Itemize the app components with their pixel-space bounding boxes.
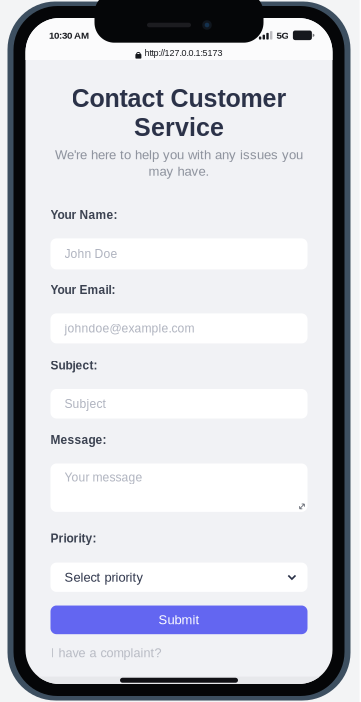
- staticText: Message:: [50, 433, 106, 447]
- staticText: Submit: [158, 613, 199, 627]
- staticText: Select priority: [64, 570, 142, 584]
- button[interactable]: Submit: [50, 605, 307, 634]
- staticText: Service: [134, 113, 224, 141]
- button[interactable]: Your message: [50, 463, 307, 512]
- button[interactable]: I have a complaint?: [50, 646, 161, 659]
- staticText: I have a complaint?: [50, 646, 161, 660]
- staticText: Your message: [64, 470, 142, 484]
- staticText: Contact Customer: [71, 84, 286, 112]
- staticText: We're here to help you with any issues y…: [55, 147, 303, 162]
- button[interactable]: johndoe@example.com: [50, 313, 307, 343]
- staticText: Priority:: [50, 532, 96, 545]
- button[interactable]: John Doe: [50, 238, 307, 269]
- staticText: Subject:: [50, 359, 97, 372]
- button[interactable]: Select priority: [50, 563, 307, 592]
- staticText: 10:30 AM: [49, 30, 89, 41]
- staticText: johndoe@example.com: [64, 322, 194, 335]
- staticText: John Doe: [64, 247, 117, 261]
- staticText: Subject: [64, 397, 105, 410]
- staticText: may have.: [148, 164, 209, 179]
- staticText: Your Name:: [50, 208, 117, 222]
- button[interactable]: Subject: [50, 389, 307, 418]
- staticText: 5G: [276, 30, 289, 41]
- staticText: http://127.0.0.1:5173: [145, 48, 223, 58]
- staticText: Your Email:: [50, 283, 115, 297]
